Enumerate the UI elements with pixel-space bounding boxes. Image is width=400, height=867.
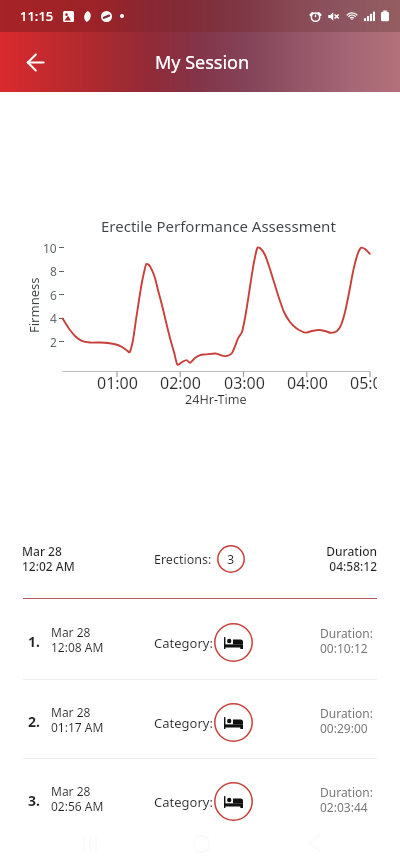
staticText: Category: (154, 793, 213, 811)
staticText: 05:00 (350, 372, 377, 394)
button[interactable]: 2. (0, 679, 400, 758)
button[interactable]: 3. (0, 758, 400, 837)
staticText: 3 (227, 551, 235, 568)
staticText: 24Hr-Time (185, 391, 247, 408)
staticText: 1. (28, 632, 40, 651)
staticText: Duration 04:58:12 (326, 543, 377, 574)
staticText: Mar 28 12:02 AM (22, 543, 75, 574)
button[interactable]: Back (12, 39, 58, 85)
staticText: Mar 28 12:08 AM (51, 624, 104, 656)
staticText: 8 (50, 263, 57, 279)
staticText: 10 (43, 240, 57, 256)
staticText: Duration: 02:03:44 (320, 784, 373, 816)
staticText: Mar 28 01:17 AM (51, 704, 104, 736)
staticText: 03:00 (224, 372, 265, 394)
staticText: 11:15 (20, 7, 54, 25)
staticText: Mar 28 02:56 AM (51, 783, 104, 815)
staticText: 4 (50, 310, 57, 326)
staticText: Duration: 00:10:12 (320, 625, 373, 657)
staticText: 2. (28, 712, 40, 731)
staticText: 02:00 (160, 372, 201, 394)
staticText: My Session (155, 50, 250, 75)
staticText: 2 (50, 334, 57, 350)
staticText: 01:00 (97, 372, 138, 394)
staticText: Erections: (154, 551, 212, 568)
staticText: 04:00 (287, 372, 328, 394)
staticText: Category: (154, 634, 213, 652)
staticText: Erectile Performance Assessment (101, 216, 336, 236)
staticText: Duration: 00:29:00 (320, 705, 373, 737)
staticText: 6 (50, 287, 57, 303)
staticText: Category: (154, 714, 213, 732)
staticText: 3. (28, 791, 40, 810)
staticText: Firmness (25, 277, 43, 333)
button[interactable]: 1. (0, 599, 400, 678)
